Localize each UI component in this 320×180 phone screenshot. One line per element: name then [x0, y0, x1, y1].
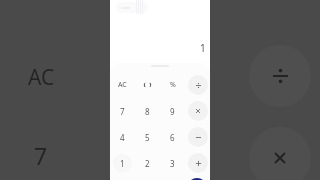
button[interactable]: 2: [135, 150, 160, 176]
staticText: %: [170, 80, 176, 90]
button[interactable]: [185, 72, 210, 98]
button[interactable]: 6: [160, 124, 185, 150]
staticText: 9: [170, 106, 175, 117]
button[interactable]: Equals: [187, 178, 207, 180]
staticText: 8: [145, 106, 150, 117]
button[interactable]: 7: [110, 98, 135, 124]
button[interactable]: Divide: [249, 45, 311, 107]
button[interactable]: AC: [21, 63, 62, 89]
button[interactable]: 1: [110, 150, 135, 176]
button[interactable]: AC: [110, 72, 135, 98]
button[interactable]: [135, 72, 160, 98]
button[interactable]: 4: [110, 124, 135, 150]
staticText: AC: [118, 80, 127, 90]
button[interactable]: [185, 124, 210, 150]
button[interactable]: [185, 150, 210, 176]
staticText: 7: [34, 140, 48, 168]
staticText: 3: [170, 158, 175, 169]
button[interactable]: [185, 98, 210, 124]
staticText: 1: [200, 41, 206, 53]
staticText: 7: [120, 106, 125, 117]
button[interactable]: 8: [135, 98, 160, 124]
staticText: 5: [145, 132, 150, 143]
staticText: 6: [170, 132, 175, 143]
staticText: 2: [145, 158, 150, 169]
button[interactable]: Multiply: [249, 127, 311, 180]
button[interactable]: %: [160, 72, 185, 98]
staticText: AC: [28, 63, 55, 89]
button[interactable]: 5: [135, 124, 160, 150]
button[interactable]: 9: [160, 98, 185, 124]
button[interactable]: 7: [28, 140, 53, 168]
button[interactable]: 3: [160, 150, 185, 176]
staticText: 4: [120, 132, 125, 143]
staticText: 1: [120, 158, 125, 169]
